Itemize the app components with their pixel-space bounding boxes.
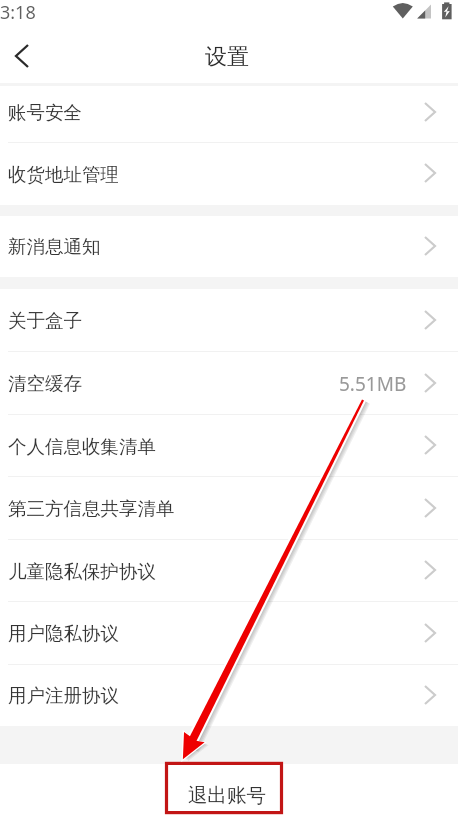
button[interactable]: 关于盒子 <box>0 289 458 352</box>
button[interactable]: 账号安全 <box>0 86 458 143</box>
staticText: 第三方信息共享清单 <box>8 497 175 520</box>
button[interactable]: 新消息通知 <box>0 216 458 277</box>
button[interactable]: 退出账号 <box>0 764 458 820</box>
button[interactable]: 用户注册协议 <box>0 665 458 726</box>
staticText: 儿童隐私保护协议 <box>8 560 156 583</box>
staticText: 用户隐私协议 <box>8 622 119 645</box>
staticText: 新消息通知 <box>8 235 101 258</box>
staticText: 个人信息收集清单 <box>8 435 156 458</box>
button[interactable]: 个人信息收集清单 <box>0 415 458 477</box>
button[interactable]: 用户隐私协议 <box>0 602 458 665</box>
button[interactable]: 清空缓存 <box>0 352 458 415</box>
staticText: 账号安全 <box>8 101 82 124</box>
staticText: 清空缓存 <box>8 372 82 395</box>
staticText: 设置 <box>205 43 249 71</box>
button[interactable]: 第三方信息共享清单 <box>0 477 458 540</box>
staticText: 用户注册协议 <box>8 684 119 707</box>
staticText: 5.51MB <box>339 371 407 397</box>
button[interactable]: 儿童隐私保护协议 <box>0 540 458 602</box>
staticText: 关于盒子 <box>8 309 82 332</box>
staticText: 退出账号 <box>188 783 266 808</box>
button[interactable]: Back <box>0 34 44 78</box>
staticText: 3:18 <box>0 0 36 25</box>
button[interactable]: 收货地址管理 <box>0 143 458 205</box>
staticText: 收货地址管理 <box>8 163 119 186</box>
